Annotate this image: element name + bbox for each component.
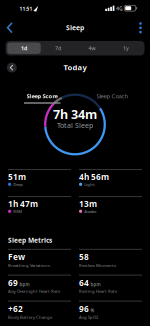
staticText: % <box>90 308 94 314</box>
button[interactable]: 69 <box>8 274 74 296</box>
staticText: 96 <box>79 303 89 314</box>
staticText: Sleep Metrics <box>8 236 52 245</box>
staticText: Breathing Variations <box>8 262 50 268</box>
staticText: REM <box>13 208 22 214</box>
staticText: 7d <box>55 45 61 52</box>
button[interactable]: 1y <box>109 42 143 54</box>
button[interactable]: 4w <box>75 42 109 54</box>
staticText: 69 <box>8 277 18 288</box>
staticText: Sleep Coach <box>96 92 128 100</box>
staticText: 51m <box>8 171 26 182</box>
staticText: Resting Heart Rate <box>79 288 117 294</box>
staticText: 4w <box>88 45 95 52</box>
staticText: bpm <box>90 282 100 288</box>
button[interactable]: 64 <box>79 274 145 296</box>
button[interactable]: +62 <box>8 300 74 322</box>
staticText: Avg Overnight Heart Rate <box>8 288 60 294</box>
button[interactable]: 96 <box>79 300 145 322</box>
button[interactable]: 7d <box>41 42 75 54</box>
staticText: 13m <box>79 198 97 209</box>
staticText: Today <box>63 62 86 72</box>
button[interactable] <box>3 21 17 35</box>
staticText: 7h 34m <box>53 105 97 123</box>
staticText: Deep <box>13 181 23 187</box>
staticText: Sleep <box>66 23 84 32</box>
button[interactable]: 58 <box>79 248 145 270</box>
staticText: 4h 56m <box>79 171 109 182</box>
staticText: 11:51 <box>19 5 32 12</box>
staticText: Few <box>8 251 25 262</box>
staticText: bpm <box>19 282 29 288</box>
button[interactable] <box>7 63 17 72</box>
staticText: 64 <box>79 277 89 288</box>
button[interactable] <box>134 22 146 34</box>
staticText: +62 <box>8 303 23 314</box>
staticText: 1h 47m <box>8 198 38 209</box>
staticText: Restless Moments <box>79 262 116 268</box>
staticText: Total Sleep <box>57 120 93 130</box>
staticText: 1y <box>123 45 129 52</box>
button[interactable]: Sleep Coach <box>77 89 147 103</box>
button[interactable]: Sleep Score <box>7 89 77 103</box>
staticText: Awake <box>84 208 96 214</box>
staticText: Body Battery Change <box>8 314 52 320</box>
staticText: 1d <box>21 45 27 52</box>
staticText: Sleep Score <box>26 92 57 100</box>
staticText: 4G <box>116 5 122 12</box>
staticText: Light <box>84 181 95 187</box>
staticText: Avg SpO2 <box>79 314 98 320</box>
button[interactable]: 1d <box>7 42 41 54</box>
staticText: 58 <box>79 251 89 262</box>
button[interactable]: Few <box>8 248 74 270</box>
